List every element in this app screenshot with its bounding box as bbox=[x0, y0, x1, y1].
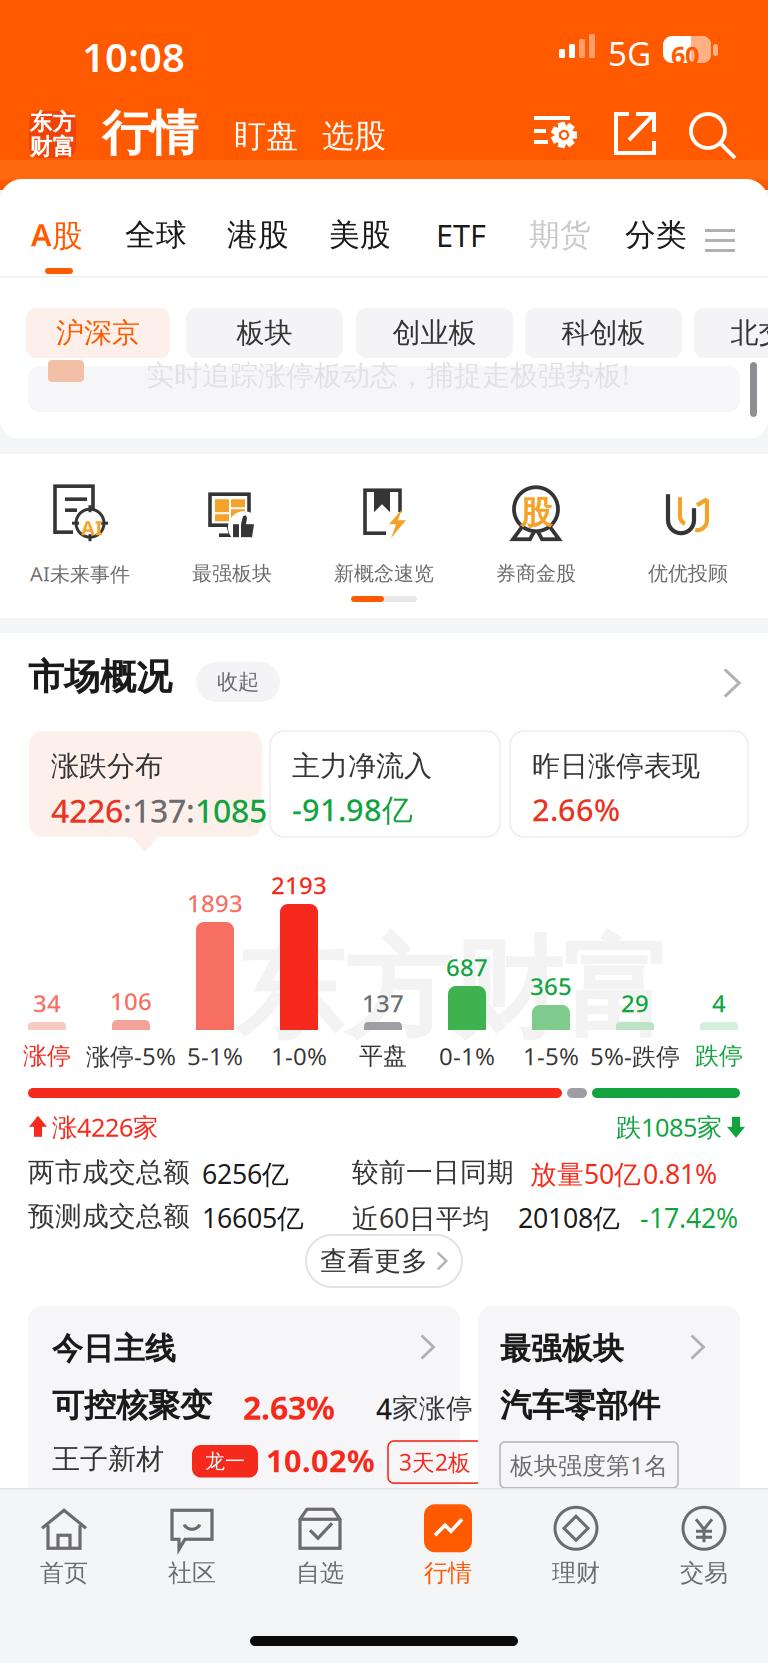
staticText: 龙一 bbox=[205, 1449, 245, 1474]
button[interactable]: 最强板块 bbox=[478, 1306, 740, 1528]
staticText: 1-5% bbox=[523, 1040, 579, 1072]
staticText: 创业板 bbox=[392, 316, 476, 350]
staticText: 60 bbox=[671, 38, 699, 72]
staticText: 0.81% bbox=[643, 1156, 717, 1191]
staticText: 券商金股 bbox=[496, 561, 576, 586]
staticText: 优优投顾 bbox=[648, 561, 728, 586]
staticText: 北交所 bbox=[730, 316, 768, 350]
staticText: 2.66% bbox=[532, 789, 620, 830]
staticText: 最强板块 bbox=[500, 1330, 624, 1368]
button[interactable]: 昨日涨停表现 bbox=[510, 731, 748, 837]
button[interactable]: 交易 bbox=[640, 1500, 768, 1592]
button[interactable]: 首页 bbox=[0, 1500, 128, 1592]
button[interactable]: 主力净流入 bbox=[270, 731, 500, 837]
staticText: 预测成交总额 bbox=[28, 1200, 190, 1233]
staticText: A股 bbox=[31, 214, 83, 255]
staticText: 财富 bbox=[29, 133, 75, 161]
staticText: 9.99% bbox=[658, 1498, 749, 1539]
staticText: 最强板块 bbox=[192, 561, 272, 586]
staticText: 板块强度第1名 bbox=[510, 1449, 668, 1481]
button[interactable]: 涨跌分布 bbox=[29, 731, 262, 853]
button[interactable]: 今日主线 bbox=[28, 1306, 460, 1528]
button[interactable]: 板块 bbox=[186, 308, 343, 358]
staticText: 美股 bbox=[329, 216, 391, 254]
button[interactable]: 分类 bbox=[622, 214, 690, 256]
staticText: 涨停 bbox=[23, 1041, 71, 1071]
staticText: 10.02% bbox=[266, 1440, 375, 1481]
staticText: 137 bbox=[362, 987, 404, 1019]
staticText: 选股 bbox=[322, 116, 386, 156]
button[interactable]: 查看更多 bbox=[306, 1235, 462, 1287]
button[interactable]: ETF bbox=[427, 214, 495, 256]
staticText: 自选 bbox=[296, 1558, 344, 1588]
staticText: 昨日涨停表现 bbox=[532, 749, 700, 783]
button[interactable]: 筛选 bbox=[534, 112, 580, 154]
staticText: 新概念速览 bbox=[334, 561, 434, 586]
staticText: 市场概况 bbox=[28, 655, 172, 699]
button[interactable]: 社区 bbox=[128, 1500, 256, 1592]
staticText: 137 bbox=[132, 789, 186, 831]
staticText: 期货 bbox=[529, 216, 591, 254]
button[interactable]: 更多 bbox=[712, 663, 752, 703]
staticText: 主力净流入 bbox=[292, 749, 432, 783]
staticText: 涨停-5% bbox=[86, 1040, 176, 1072]
staticText: 行情 bbox=[102, 104, 198, 163]
staticText: 15.05% bbox=[266, 1496, 375, 1537]
staticText: 科创板 bbox=[561, 316, 645, 350]
staticText: AI未来事件 bbox=[30, 560, 130, 587]
staticText: 交易 bbox=[680, 1558, 728, 1588]
staticText: 东方财富 bbox=[235, 923, 671, 1057]
button[interactable]: 盯盘 bbox=[228, 112, 304, 160]
staticText: 5-1% bbox=[187, 1040, 243, 1072]
staticText: 可控核聚变 bbox=[52, 1386, 212, 1425]
staticText: 涨4226家 bbox=[52, 1110, 158, 1144]
button[interactable]: 股 bbox=[460, 478, 612, 590]
button[interactable]: 理财 bbox=[512, 1500, 640, 1592]
button[interactable]: 沪深京 bbox=[26, 308, 170, 358]
staticText: 家涨停 bbox=[392, 1392, 473, 1425]
button[interactable]: 更多分类 bbox=[698, 220, 742, 262]
button[interactable]: 优优投顾 bbox=[612, 478, 764, 590]
staticText: 板块 bbox=[236, 316, 292, 350]
staticText: 收起 bbox=[217, 669, 259, 695]
button[interactable]: 北交所 bbox=[694, 308, 768, 358]
button[interactable]: 创业板 bbox=[356, 308, 513, 358]
staticText: 今日主线 bbox=[52, 1330, 176, 1368]
button[interactable]: A股 bbox=[27, 214, 95, 276]
button[interactable]: 自选 bbox=[256, 1500, 384, 1592]
button[interactable]: 科创板 bbox=[525, 308, 682, 358]
button[interactable]: 美股 bbox=[326, 214, 394, 256]
staticText: 社区 bbox=[168, 1558, 216, 1588]
staticText: 港股 bbox=[227, 216, 289, 254]
button[interactable]: 全球 bbox=[122, 214, 190, 256]
staticText: 10:08 bbox=[82, 30, 185, 83]
button[interactable]: 分享 bbox=[612, 111, 658, 157]
staticText: 跌1085家 bbox=[616, 1110, 722, 1144]
button[interactable]: 最强板块 bbox=[156, 478, 308, 590]
staticText: -17.42% bbox=[640, 1200, 738, 1235]
button[interactable]: 行情 bbox=[384, 1500, 512, 1592]
staticText: 平盘 bbox=[359, 1041, 407, 1071]
staticText: 5%-跌停 bbox=[590, 1040, 680, 1072]
staticText: 1085 bbox=[195, 789, 267, 831]
button[interactable]: 期货 bbox=[526, 214, 594, 256]
staticText: 分类 bbox=[625, 216, 687, 254]
staticText: : bbox=[186, 789, 195, 831]
button[interactable]: 港股 bbox=[224, 214, 292, 256]
staticText: AI bbox=[81, 514, 103, 541]
button[interactable]: 搜索 bbox=[688, 111, 738, 161]
button[interactable]: AI bbox=[4, 478, 156, 590]
staticText: 理财 bbox=[552, 1558, 600, 1588]
staticText: 近60日平均 bbox=[352, 1200, 490, 1235]
button[interactable]: 新概念速览 bbox=[308, 478, 460, 590]
button[interactable]: 选股 bbox=[316, 112, 392, 160]
staticText: 4 bbox=[376, 1390, 392, 1427]
staticText: 20108亿 bbox=[518, 1200, 620, 1235]
staticText: 5G bbox=[608, 31, 651, 75]
staticText: 股 bbox=[520, 493, 552, 532]
staticText: 687 bbox=[446, 951, 488, 983]
staticText: 放量50亿 bbox=[530, 1156, 641, 1191]
button[interactable]: 收起 bbox=[196, 662, 280, 702]
button[interactable]: 东方财富 bbox=[29, 111, 76, 158]
staticText: 涨跌分布 bbox=[51, 749, 163, 783]
